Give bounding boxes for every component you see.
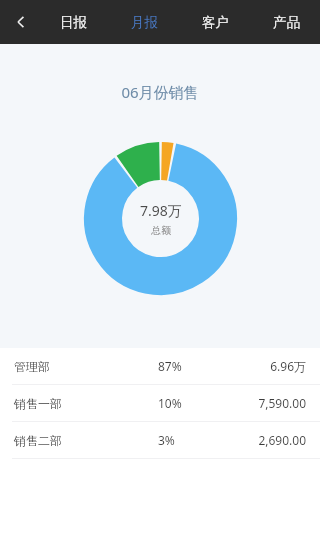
staticText: 2,690.00	[258, 432, 306, 448]
staticText: 87%	[158, 358, 182, 374]
button[interactable]: 客户	[194, 6, 237, 39]
button[interactable]: 月报	[123, 6, 166, 39]
staticText: 7.98万	[140, 201, 182, 220]
button[interactable]: Back	[2, 2, 42, 42]
staticText: 销售二部	[14, 433, 158, 448]
button[interactable]: 日报	[52, 6, 95, 39]
staticText: 3%	[158, 432, 175, 448]
button[interactable]: 产品	[265, 6, 308, 39]
staticText: 06月份销售	[121, 82, 199, 102]
button[interactable]: 管理部	[0, 348, 320, 384]
staticText: 总额	[151, 224, 171, 237]
staticText: 日报	[60, 14, 87, 31]
staticText: 7,590.00	[258, 395, 306, 411]
staticText: 客户	[202, 14, 229, 31]
staticText: 销售一部	[14, 396, 158, 411]
button[interactable]: 销售一部	[0, 385, 320, 421]
staticText: 6.96万	[270, 358, 306, 374]
staticText: 管理部	[14, 359, 158, 374]
button[interactable]: 销售二部	[0, 422, 320, 458]
staticText: 产品	[273, 14, 300, 31]
staticText: 月报	[131, 14, 158, 31]
staticText: 10%	[158, 395, 182, 411]
